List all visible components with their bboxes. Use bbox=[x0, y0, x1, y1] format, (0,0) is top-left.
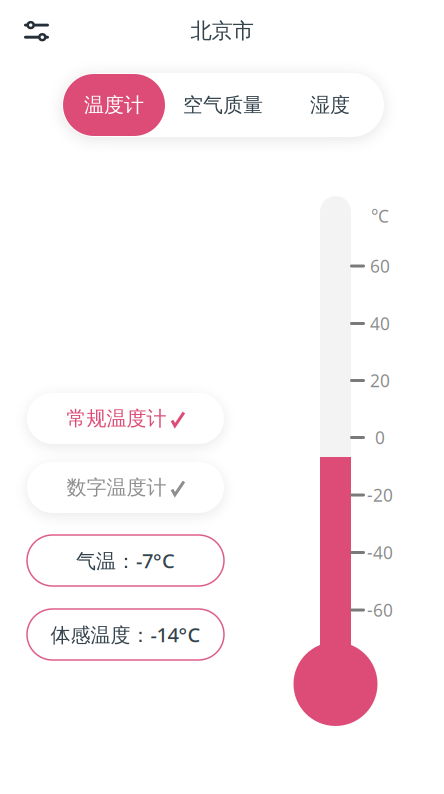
button[interactable]: 体感温度：-14°C bbox=[27, 609, 224, 660]
staticText: -20 bbox=[367, 483, 393, 506]
staticText: 湿度 bbox=[310, 93, 350, 117]
staticText: -60 bbox=[367, 598, 393, 621]
button[interactable]: 温度计 bbox=[63, 74, 165, 136]
staticText: 北京市 bbox=[190, 18, 253, 44]
button[interactable]: Filter settings bbox=[14, 9, 58, 53]
staticText: 数字温度计 bbox=[66, 475, 166, 500]
button[interactable]: 空气质量 bbox=[168, 73, 278, 137]
staticText: 气温：-7°C bbox=[76, 547, 175, 574]
button[interactable]: 数字温度计 bbox=[27, 462, 224, 513]
staticText: 温度计 bbox=[84, 93, 144, 117]
staticText: 常规温度计 bbox=[66, 406, 166, 431]
button[interactable]: 湿度 bbox=[280, 73, 380, 137]
button[interactable]: 常规温度计 bbox=[27, 393, 224, 444]
staticText: 体感温度：-14°C bbox=[50, 621, 200, 648]
button[interactable]: 气温：-7°C bbox=[27, 535, 224, 586]
staticText: -40 bbox=[367, 541, 393, 564]
staticText: 20 bbox=[370, 369, 390, 392]
staticText: 40 bbox=[370, 312, 390, 335]
staticText: 0 bbox=[375, 426, 385, 449]
staticText: 60 bbox=[370, 254, 390, 277]
staticText: °C bbox=[371, 204, 389, 227]
staticText: 空气质量 bbox=[183, 93, 263, 117]
